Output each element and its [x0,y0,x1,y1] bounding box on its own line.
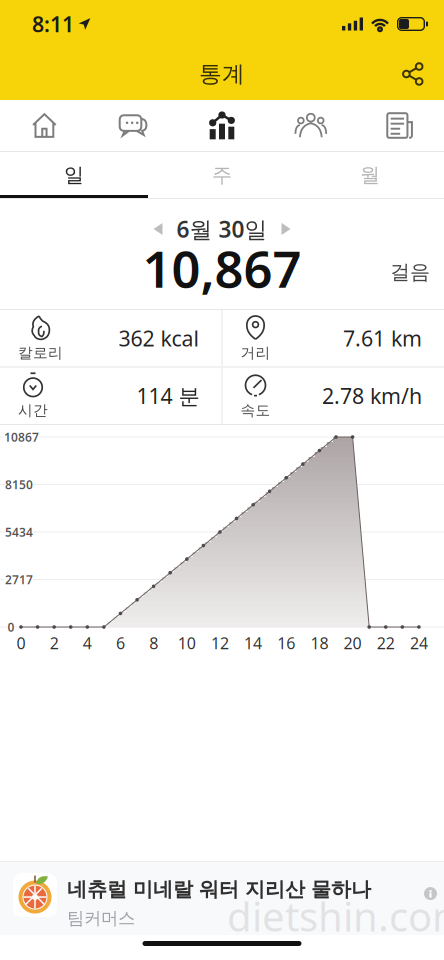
staticText: 월 [360,163,380,187]
staticText: 12 [211,632,229,654]
staticText: 2.78 km/h [322,382,422,410]
staticText: 10,867 [142,234,301,302]
staticText: 속도 [240,401,270,419]
staticText: 6 [116,632,125,654]
staticText: 8:11 [32,10,74,38]
staticText: 362 kcal [118,324,199,352]
staticText: 14 [244,632,262,654]
staticText: 8150 [5,476,33,492]
staticText: 걸음 [390,260,430,284]
staticText: 20 [344,632,362,654]
staticText: 10867 [4,429,39,445]
button[interactable]: Previous day [143,213,172,245]
button[interactable]: News [355,100,444,151]
staticText: 2717 [5,571,33,587]
staticText: 주 [212,163,232,187]
staticText: 0 [16,632,25,654]
staticText: 4 [83,632,92,654]
staticText: 2 [50,632,59,654]
staticText: 네츄럴 미네랄 워터 지리산 물하나 [67,877,371,902]
staticText: 22 [377,632,395,654]
staticText: 5434 [5,524,33,540]
staticText: 6월 30일 [176,214,267,244]
staticText: 0 [7,619,14,635]
button[interactable]: Next day [271,213,300,245]
staticText: 통계 [199,60,245,88]
button[interactable]: Share [402,51,444,97]
staticText: 18 [310,632,328,654]
button[interactable]: Home [0,100,89,151]
button[interactable]: Friends [266,100,355,151]
staticText: 팀커머스 [67,908,135,929]
staticText: 114 분 [136,382,199,410]
staticText: 10 [178,632,196,654]
staticText: dietshin.com [227,889,444,942]
button[interactable]: 월 [296,152,444,198]
button[interactable]: Chat [89,100,178,151]
staticText: 칼로리 [18,344,63,362]
staticText: 시간 [18,401,48,419]
staticText: 24 [410,632,428,654]
button[interactable]: Statistics [178,100,266,151]
staticText: 8 [149,632,158,654]
staticText: 16 [277,632,295,654]
button[interactable]: 주 [148,152,296,198]
staticText: 거리 [240,344,270,362]
staticText: 7.61 km [343,324,422,352]
staticText: 일 [64,163,84,187]
button[interactable]: Ad [0,861,444,935]
button[interactable]: 일 [0,152,148,198]
